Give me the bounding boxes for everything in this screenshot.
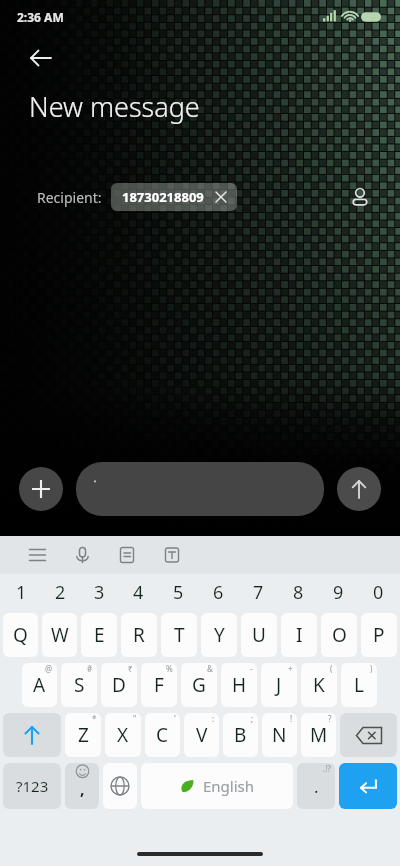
staticText: J	[276, 672, 282, 698]
button[interactable]: P	[361, 613, 397, 657]
staticText: W	[51, 622, 69, 648]
staticText: L	[354, 672, 364, 698]
button[interactable]: 0	[358, 574, 398, 610]
button[interactable]: L	[341, 663, 377, 707]
staticText: E	[94, 622, 105, 648]
staticText: #	[87, 663, 93, 674]
button[interactable]: Add attachment	[19, 467, 63, 511]
staticText: Q	[13, 622, 28, 648]
staticText: .!?	[323, 763, 331, 774]
staticText: X	[117, 722, 129, 748]
button[interactable]: R	[121, 613, 157, 657]
button[interactable]: C	[145, 713, 180, 757]
button[interactable]: G	[181, 663, 217, 707]
staticText: New message	[29, 88, 200, 125]
button[interactable]: 1	[2, 574, 41, 610]
button[interactable]: 3	[80, 574, 119, 610]
button[interactable]: W	[42, 613, 77, 657]
staticText: English	[203, 776, 255, 796]
staticText: ?	[328, 713, 332, 724]
button[interactable]: Backspace	[340, 713, 397, 757]
staticText: ₹	[128, 663, 133, 674]
button[interactable]: 2	[41, 574, 80, 610]
staticText: 4	[133, 580, 144, 605]
button[interactable]: F	[141, 663, 177, 707]
button[interactable]: X	[105, 713, 141, 757]
staticText: C	[156, 722, 169, 748]
staticText: I	[296, 622, 303, 648]
button[interactable]: U	[241, 613, 277, 657]
button[interactable]: E	[81, 613, 117, 657]
button[interactable]: 18730218809	[111, 183, 237, 211]
button[interactable]: Enter	[339, 763, 397, 809]
button[interactable]: N	[262, 713, 297, 757]
staticText: +	[288, 663, 293, 674]
staticText: K	[313, 672, 325, 698]
button[interactable]: Change language	[103, 763, 137, 809]
staticText: D	[112, 672, 126, 698]
button[interactable]: 7	[238, 574, 278, 610]
staticText: )	[370, 663, 373, 674]
button[interactable]: I	[281, 613, 317, 657]
staticText: ,	[80, 778, 85, 800]
staticText: P	[373, 622, 385, 648]
staticText: F	[154, 672, 164, 698]
staticText: 18730218809	[122, 188, 204, 206]
button[interactable]: Emoji	[65, 763, 99, 809]
staticText: N	[272, 722, 287, 748]
button[interactable]: Send	[337, 467, 381, 511]
staticText: @	[45, 663, 53, 674]
staticText: Z	[78, 722, 89, 748]
button[interactable]: M	[301, 713, 336, 757]
button[interactable]: Z	[65, 713, 101, 757]
button[interactable]: 4	[119, 574, 158, 610]
button[interactable]: J	[261, 663, 297, 707]
staticText: "	[133, 713, 137, 724]
button[interactable]: Text settings	[155, 538, 189, 572]
button[interactable]: 5	[158, 574, 198, 610]
staticText: Recipient:	[37, 188, 102, 207]
button[interactable]: A	[22, 663, 57, 707]
staticText: T	[174, 622, 185, 648]
button[interactable]: Shift	[3, 713, 61, 757]
staticText: (	[330, 663, 333, 674]
button[interactable]: B	[223, 713, 258, 757]
button[interactable]: T	[161, 613, 197, 657]
staticText: 8	[293, 580, 304, 605]
button[interactable]: K	[301, 663, 337, 707]
staticText: 9	[333, 580, 344, 605]
button[interactable]: .	[297, 763, 335, 809]
staticText: 6	[213, 580, 224, 605]
button[interactable]: H	[221, 663, 257, 707]
button[interactable]: 6	[198, 574, 238, 610]
button[interactable]: Q	[3, 613, 38, 657]
button[interactable]: Y	[201, 613, 237, 657]
button[interactable]: 8	[278, 574, 318, 610]
button[interactable]	[76, 462, 324, 516]
staticText: H	[232, 672, 247, 698]
staticText: 5	[173, 580, 184, 605]
staticText: :	[212, 713, 215, 724]
staticText: 2	[55, 580, 66, 605]
staticText: B	[234, 722, 247, 748]
button[interactable]: Clipboard	[110, 538, 144, 572]
staticText: '	[174, 713, 176, 724]
staticText: 1	[16, 580, 27, 605]
button[interactable]: 9	[318, 574, 358, 610]
staticText: M	[310, 722, 328, 748]
button[interactable]: ?123	[3, 763, 61, 809]
button[interactable]: Voice input	[65, 538, 99, 572]
button[interactable]: English	[141, 763, 293, 809]
staticText: 3	[94, 580, 105, 605]
button[interactable]: S	[61, 663, 97, 707]
staticText: S	[74, 672, 85, 698]
button[interactable]: Choose contact	[342, 179, 378, 215]
staticText: 2:36 AM	[17, 9, 64, 25]
button[interactable]: Keyboard menu	[20, 538, 54, 572]
button[interactable]: Back	[17, 34, 65, 82]
staticText: *	[92, 713, 97, 724]
button[interactable]: D	[101, 663, 137, 707]
button[interactable]: O	[321, 613, 357, 657]
button[interactable]: V	[184, 713, 219, 757]
staticText: U	[252, 622, 266, 648]
